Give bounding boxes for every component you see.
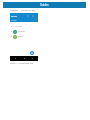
staticText: 3 new (11, 19, 17, 22)
button[interactable]: Compose (30, 51, 34, 55)
staticText: Inbox (11, 15, 17, 18)
staticText: Bob k. (18, 35, 24, 38)
staticText: Alice m. (18, 30, 26, 33)
button[interactable]: Alice m. (11, 29, 38, 34)
staticText: Figure 1. The finished app (10, 62, 33, 65)
staticText: Guides (40, 3, 49, 7)
staticText: Android (10, 9, 19, 12)
button[interactable]: Bob k. (11, 34, 38, 39)
staticText: All mail (15, 25, 22, 28)
button[interactable]: All mail (11, 24, 38, 28)
button[interactable]: Guides (3, 2, 86, 8)
staticText: Create an app (21, 9, 36, 12)
